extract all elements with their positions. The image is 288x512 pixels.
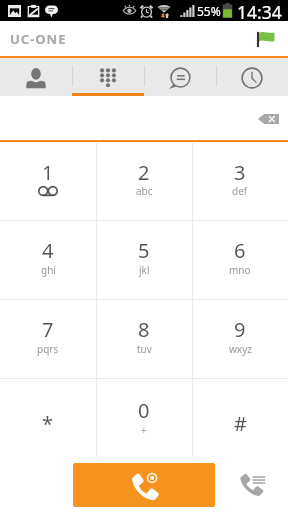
staticText: 9 bbox=[234, 316, 246, 343]
staticText: 7 bbox=[42, 316, 54, 343]
button[interactable]: Dialpad bbox=[72, 58, 144, 96]
staticText: + bbox=[141, 423, 147, 437]
staticText: 1 bbox=[42, 159, 54, 186]
button[interactable]: Key 6 bbox=[192, 220, 288, 299]
button[interactable]: Key 0 bbox=[96, 378, 192, 457]
staticText: 0 bbox=[138, 397, 150, 424]
staticText: 2 bbox=[138, 159, 150, 186]
staticText: tuv bbox=[137, 342, 152, 356]
button[interactable]: Key 5 bbox=[96, 220, 192, 299]
staticText: 3 bbox=[234, 159, 246, 186]
button[interactable]: Key 1 bbox=[0, 142, 96, 220]
button[interactable]: Call history bbox=[216, 58, 288, 96]
staticText: 55% bbox=[197, 3, 221, 19]
staticText: * bbox=[42, 410, 54, 437]
button[interactable]: Backspace bbox=[255, 108, 281, 130]
staticText: 4 bbox=[42, 237, 54, 264]
button[interactable]: Key 9 bbox=[192, 299, 288, 378]
button[interactable]: Key 8 bbox=[96, 299, 192, 378]
button[interactable]: Key 2 bbox=[96, 142, 192, 220]
staticText: mno bbox=[229, 263, 251, 277]
button[interactable]: Key 7 bbox=[0, 299, 96, 378]
staticText: UC-ONE bbox=[10, 30, 67, 48]
button[interactable]: Call bbox=[73, 463, 215, 507]
button[interactable]: Call options bbox=[238, 469, 268, 499]
staticText: # bbox=[234, 410, 247, 437]
button[interactable]: Contacts bbox=[0, 58, 72, 96]
button[interactable]: Key # bbox=[192, 378, 288, 457]
staticText: wxyz bbox=[229, 342, 252, 356]
staticText: 6 bbox=[234, 237, 246, 264]
button[interactable]: Key * bbox=[0, 378, 96, 457]
button[interactable]: Key 3 bbox=[192, 142, 288, 220]
staticText: ghi bbox=[41, 263, 56, 277]
staticText: 8 bbox=[138, 316, 150, 343]
staticText: pqrs bbox=[37, 342, 59, 356]
button[interactable]: Presence status bbox=[256, 30, 275, 49]
staticText: def bbox=[232, 184, 248, 198]
button[interactable]: Messages bbox=[144, 58, 216, 96]
staticText: abc bbox=[136, 184, 153, 198]
staticText: jkl bbox=[139, 263, 150, 277]
button[interactable]: Key 4 bbox=[0, 220, 96, 299]
staticText: 5 bbox=[138, 237, 150, 264]
staticText: 14:34 bbox=[237, 0, 282, 21]
